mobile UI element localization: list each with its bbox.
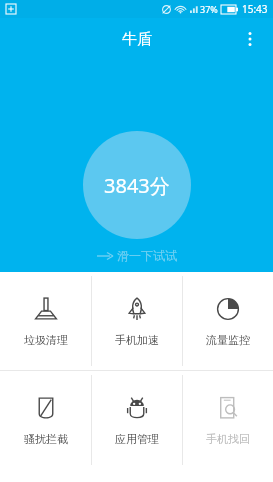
staticText: 手机加速 xyxy=(115,333,159,347)
staticText: 骚扰拦截 xyxy=(24,432,68,446)
button[interactable]: 手机加速 xyxy=(92,272,182,370)
staticText: 垃圾清理 xyxy=(24,333,68,347)
button[interactable]: 3843分 xyxy=(83,131,191,239)
button[interactable]: 流量监控 xyxy=(183,272,273,370)
staticText: 牛盾 xyxy=(122,30,152,49)
staticText: 流量监控 xyxy=(206,333,250,347)
button[interactable]: 骚扰拦截 xyxy=(0,371,91,469)
staticText: 应用管理 xyxy=(115,432,159,446)
staticText: 3843分 xyxy=(104,172,170,199)
staticText: 37% xyxy=(200,3,218,15)
staticText: 15:43 xyxy=(242,2,268,16)
staticText: 滑一下试试 xyxy=(117,248,177,263)
button[interactable]: 垃圾清理 xyxy=(0,272,91,370)
button[interactable]: More options xyxy=(231,20,269,58)
button[interactable]: 应用管理 xyxy=(92,371,182,469)
staticText: 手机找回 xyxy=(206,432,250,446)
button[interactable]: 手机找回 xyxy=(183,371,273,469)
